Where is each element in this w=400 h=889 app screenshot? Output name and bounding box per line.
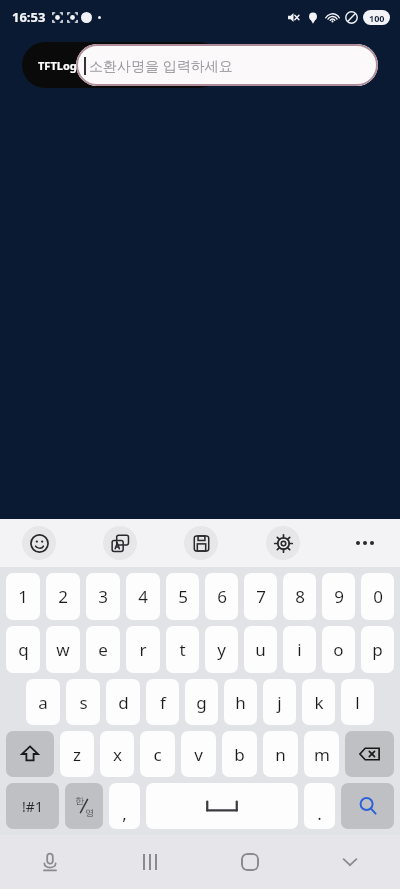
button[interactable]: Backspace bbox=[345, 731, 394, 777]
staticText: g bbox=[196, 691, 207, 714]
staticText: a bbox=[38, 691, 48, 714]
button[interactable]: l bbox=[341, 679, 374, 725]
staticText: TFTLog bbox=[38, 58, 77, 73]
staticText: u bbox=[255, 638, 266, 661]
button[interactable]: m bbox=[304, 731, 339, 777]
button[interactable]: Voice input bbox=[0, 835, 100, 889]
button[interactable]: 3 bbox=[86, 573, 120, 620]
staticText: 6 bbox=[217, 585, 227, 608]
button[interactable]: s bbox=[66, 679, 100, 725]
staticText: o bbox=[333, 638, 344, 661]
staticText: 영 bbox=[85, 807, 94, 818]
button[interactable]: o bbox=[322, 626, 355, 673]
staticText: 8 bbox=[295, 585, 305, 608]
button[interactable]: More options bbox=[348, 526, 382, 560]
staticText: , bbox=[122, 802, 127, 825]
staticText: 2 bbox=[58, 585, 68, 608]
staticText: l bbox=[355, 691, 360, 714]
button[interactable]: b bbox=[222, 731, 257, 777]
button[interactable]: 2 bbox=[46, 573, 80, 620]
staticText: s bbox=[79, 691, 88, 714]
button[interactable]: c bbox=[140, 731, 175, 777]
button[interactable]: 0 bbox=[361, 573, 394, 620]
staticText: w bbox=[56, 638, 70, 661]
staticText: p bbox=[372, 638, 383, 661]
button[interactable]: k bbox=[302, 679, 335, 725]
staticText: m bbox=[314, 743, 330, 766]
button[interactable]: n bbox=[263, 731, 298, 777]
staticText: 3 bbox=[98, 585, 108, 608]
button[interactable]: Clipboard bbox=[184, 526, 218, 560]
button[interactable]: 4 bbox=[126, 573, 160, 620]
button[interactable]: . bbox=[304, 783, 335, 829]
staticText: 한 bbox=[75, 795, 84, 806]
button[interactable]: Shift bbox=[6, 731, 54, 777]
staticText: k bbox=[314, 691, 324, 714]
staticText: 1 bbox=[18, 585, 28, 608]
button[interactable]: p bbox=[361, 626, 394, 673]
staticText: 4 bbox=[138, 585, 148, 608]
staticText: 16:53 bbox=[12, 8, 46, 26]
staticText: b bbox=[234, 743, 245, 766]
button[interactable]: Space bbox=[146, 783, 298, 829]
button[interactable]: , bbox=[109, 783, 140, 829]
button[interactable]: 8 bbox=[283, 573, 316, 620]
button[interactable]: Emoji bbox=[22, 526, 56, 560]
button[interactable]: TFTLog bbox=[22, 42, 222, 88]
button[interactable]: Korean English toggle bbox=[65, 783, 103, 829]
staticText: q bbox=[18, 638, 29, 661]
staticText: t bbox=[179, 638, 186, 661]
staticText: x bbox=[113, 743, 122, 766]
button[interactable]: Home bbox=[200, 835, 300, 889]
button[interactable]: Search bbox=[341, 783, 394, 829]
button[interactable]: Translate bbox=[103, 526, 137, 560]
button[interactable]: 1 bbox=[6, 573, 40, 620]
button[interactable]: u bbox=[244, 626, 277, 673]
staticText: . bbox=[317, 802, 322, 825]
staticText: z bbox=[73, 743, 81, 766]
button[interactable]: y bbox=[205, 626, 238, 673]
button[interactable]: x bbox=[100, 731, 134, 777]
staticText: i bbox=[297, 638, 302, 661]
staticText: 0 bbox=[373, 585, 383, 608]
button[interactable]: 소환사명을 입력하세요 bbox=[76, 44, 378, 86]
button[interactable]: w bbox=[46, 626, 80, 673]
staticText: n bbox=[275, 743, 286, 766]
staticText: y bbox=[217, 638, 226, 661]
staticText: !#1 bbox=[22, 797, 43, 816]
button[interactable]: 6 bbox=[205, 573, 238, 620]
button[interactable]: a bbox=[26, 679, 60, 725]
staticText: f bbox=[160, 691, 166, 714]
button[interactable]: 7 bbox=[244, 573, 277, 620]
button[interactable]: !#1 bbox=[6, 783, 59, 829]
button[interactable]: q bbox=[6, 626, 40, 673]
button[interactable]: j bbox=[263, 679, 296, 725]
staticText: 소환사명을 입력하세요 bbox=[89, 56, 233, 75]
staticText: 100 bbox=[369, 12, 385, 24]
staticText: 9 bbox=[334, 585, 344, 608]
staticText: e bbox=[98, 638, 108, 661]
button[interactable]: h bbox=[224, 679, 257, 725]
staticText: 5 bbox=[178, 585, 188, 608]
button[interactable]: Recents bbox=[100, 835, 200, 889]
button[interactable]: Hide keyboard bbox=[300, 835, 400, 889]
staticText: v bbox=[194, 743, 203, 766]
staticText: c bbox=[153, 743, 162, 766]
button[interactable]: z bbox=[60, 731, 94, 777]
button[interactable]: f bbox=[146, 679, 179, 725]
staticText: 7 bbox=[256, 585, 266, 608]
staticText: d bbox=[118, 691, 129, 714]
button[interactable]: i bbox=[283, 626, 316, 673]
button[interactable]: e bbox=[86, 626, 120, 673]
button[interactable]: 5 bbox=[166, 573, 199, 620]
button[interactable]: t bbox=[166, 626, 199, 673]
staticText: h bbox=[235, 691, 246, 714]
button[interactable]: d bbox=[106, 679, 140, 725]
button[interactable]: r bbox=[126, 626, 160, 673]
button[interactable]: Settings bbox=[266, 526, 300, 560]
button[interactable]: 9 bbox=[322, 573, 355, 620]
button[interactable]: g bbox=[185, 679, 218, 725]
button[interactable]: v bbox=[181, 731, 216, 777]
staticText: r bbox=[139, 638, 147, 661]
staticText: j bbox=[277, 691, 282, 714]
